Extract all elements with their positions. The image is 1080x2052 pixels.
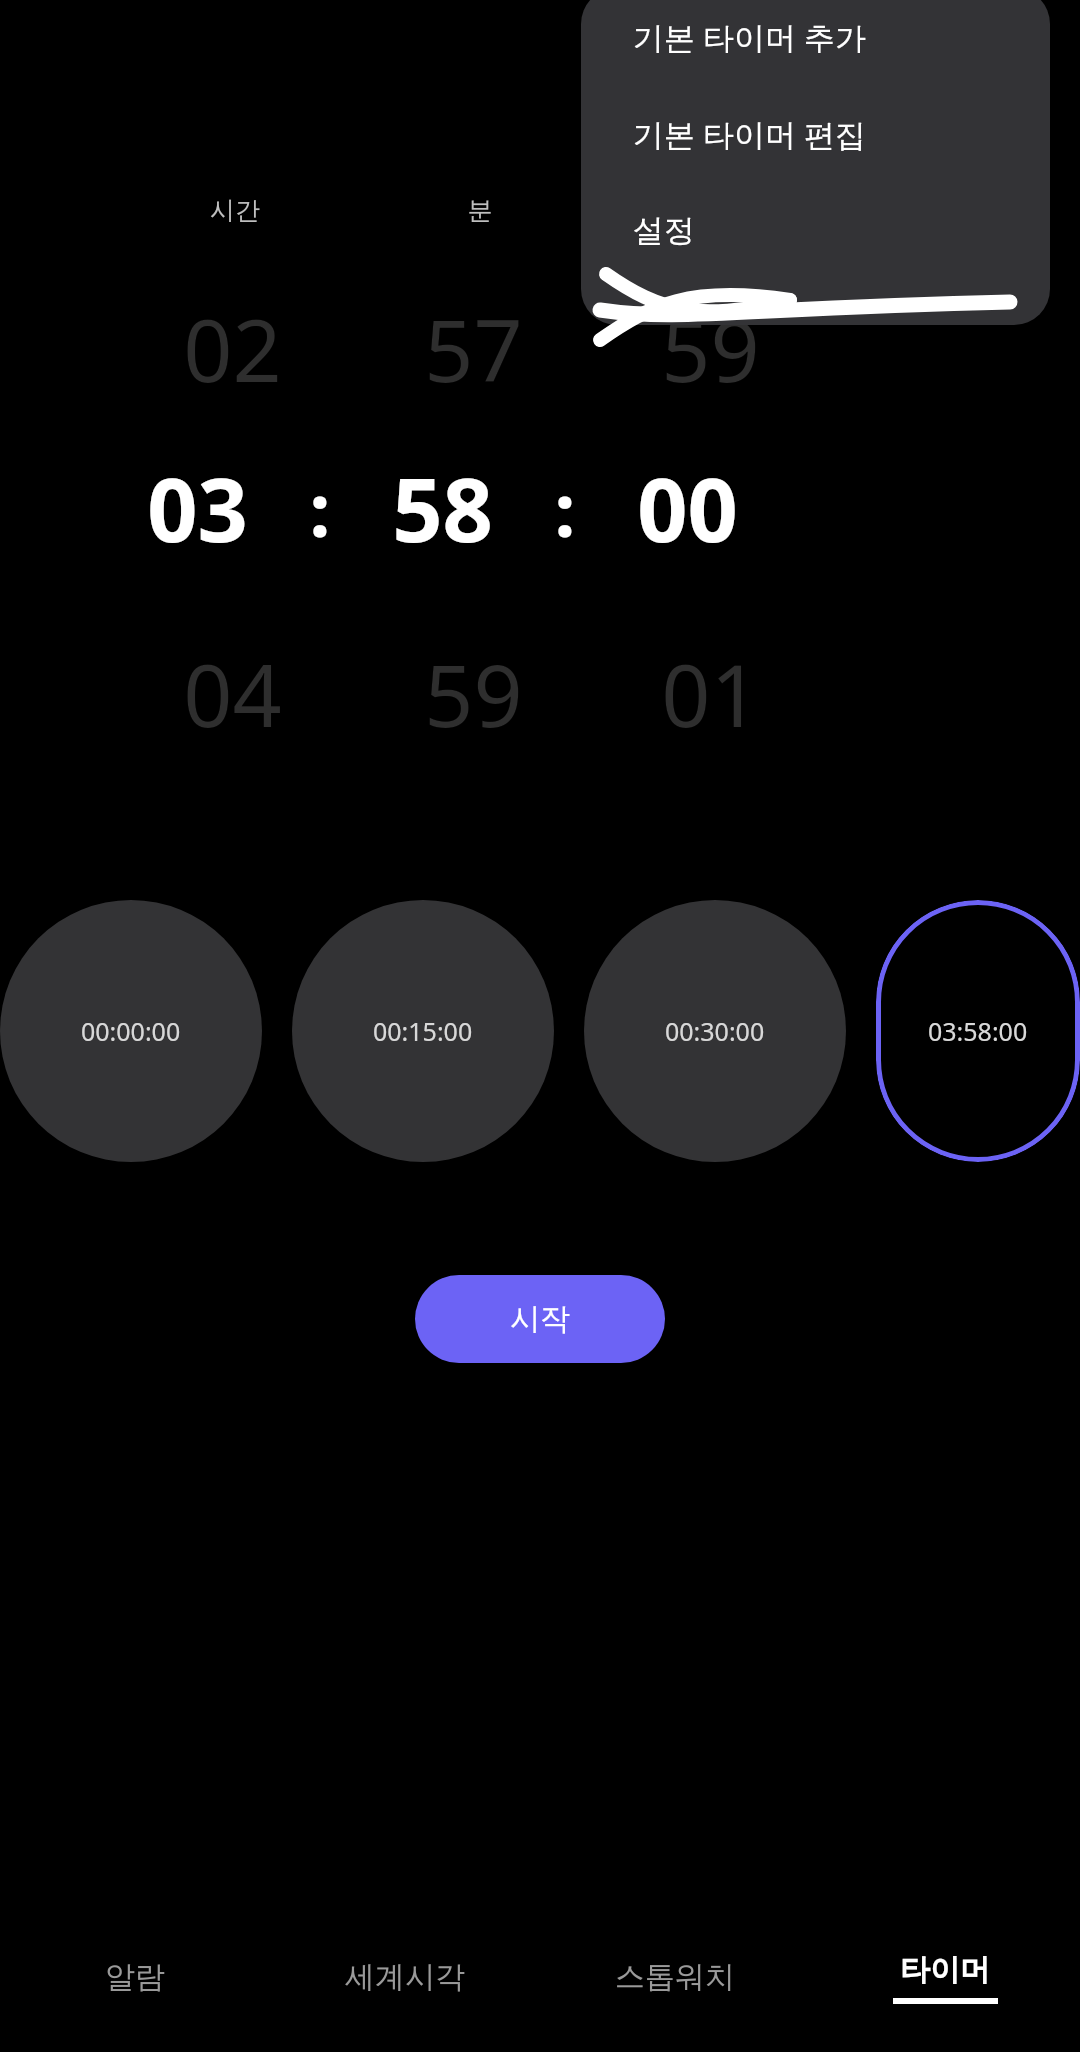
staticText: 01 <box>592 635 829 752</box>
button[interactable]: 기본 타이머 편집 <box>581 85 1050 182</box>
button[interactable]: 00:30:00 <box>584 900 846 1162</box>
staticText: 03 <box>110 448 285 568</box>
staticText: 00:15:00 <box>373 1014 473 1048</box>
button[interactable]: 타이머 <box>810 1951 1080 2004</box>
staticText: : <box>285 458 355 559</box>
staticText: 시작 <box>510 1300 570 1338</box>
button[interactable]: 00:15:00 <box>292 900 554 1162</box>
staticText: 시간 <box>110 195 360 226</box>
button[interactable]: 설정 <box>581 182 1050 279</box>
staticText: 기본 타이머 추가 <box>633 16 867 58</box>
staticText: : <box>530 458 600 559</box>
staticText: 설정 <box>633 211 695 250</box>
button[interactable]: 알람 <box>0 1958 270 1996</box>
button[interactable]: 세계시각 <box>270 1958 540 1996</box>
staticText: 00:00:00 <box>81 1014 181 1048</box>
staticText: 00 <box>600 448 775 568</box>
staticText: 02 <box>110 290 355 407</box>
staticText: 03:58:00 <box>928 1014 1028 1048</box>
button[interactable]: 03:58:00 <box>876 900 1080 1162</box>
staticText: 04 <box>110 635 355 752</box>
button[interactable]: 시작 <box>415 1275 665 1363</box>
staticText: 57 <box>355 290 592 407</box>
staticText: 기본 타이머 편집 <box>633 113 867 155</box>
staticText: 분 <box>360 195 600 226</box>
button[interactable]: 스톱워치 <box>540 1958 810 1996</box>
other: Pointer annotation <box>0 0 1080 2052</box>
staticText: 58 <box>355 448 530 568</box>
staticText: 59 <box>592 290 829 407</box>
staticText: 알람 <box>105 1958 165 1996</box>
staticText: 00:30:00 <box>665 1014 765 1048</box>
staticText: 스톱워치 <box>615 1958 735 1996</box>
button[interactable]: 기본 타이머 추가 <box>581 0 1050 85</box>
staticText: 59 <box>355 635 592 752</box>
button[interactable]: 00:00:00 <box>0 900 262 1162</box>
staticText: 세계시각 <box>345 1958 465 1996</box>
staticText: 타이머 <box>900 1951 990 1989</box>
